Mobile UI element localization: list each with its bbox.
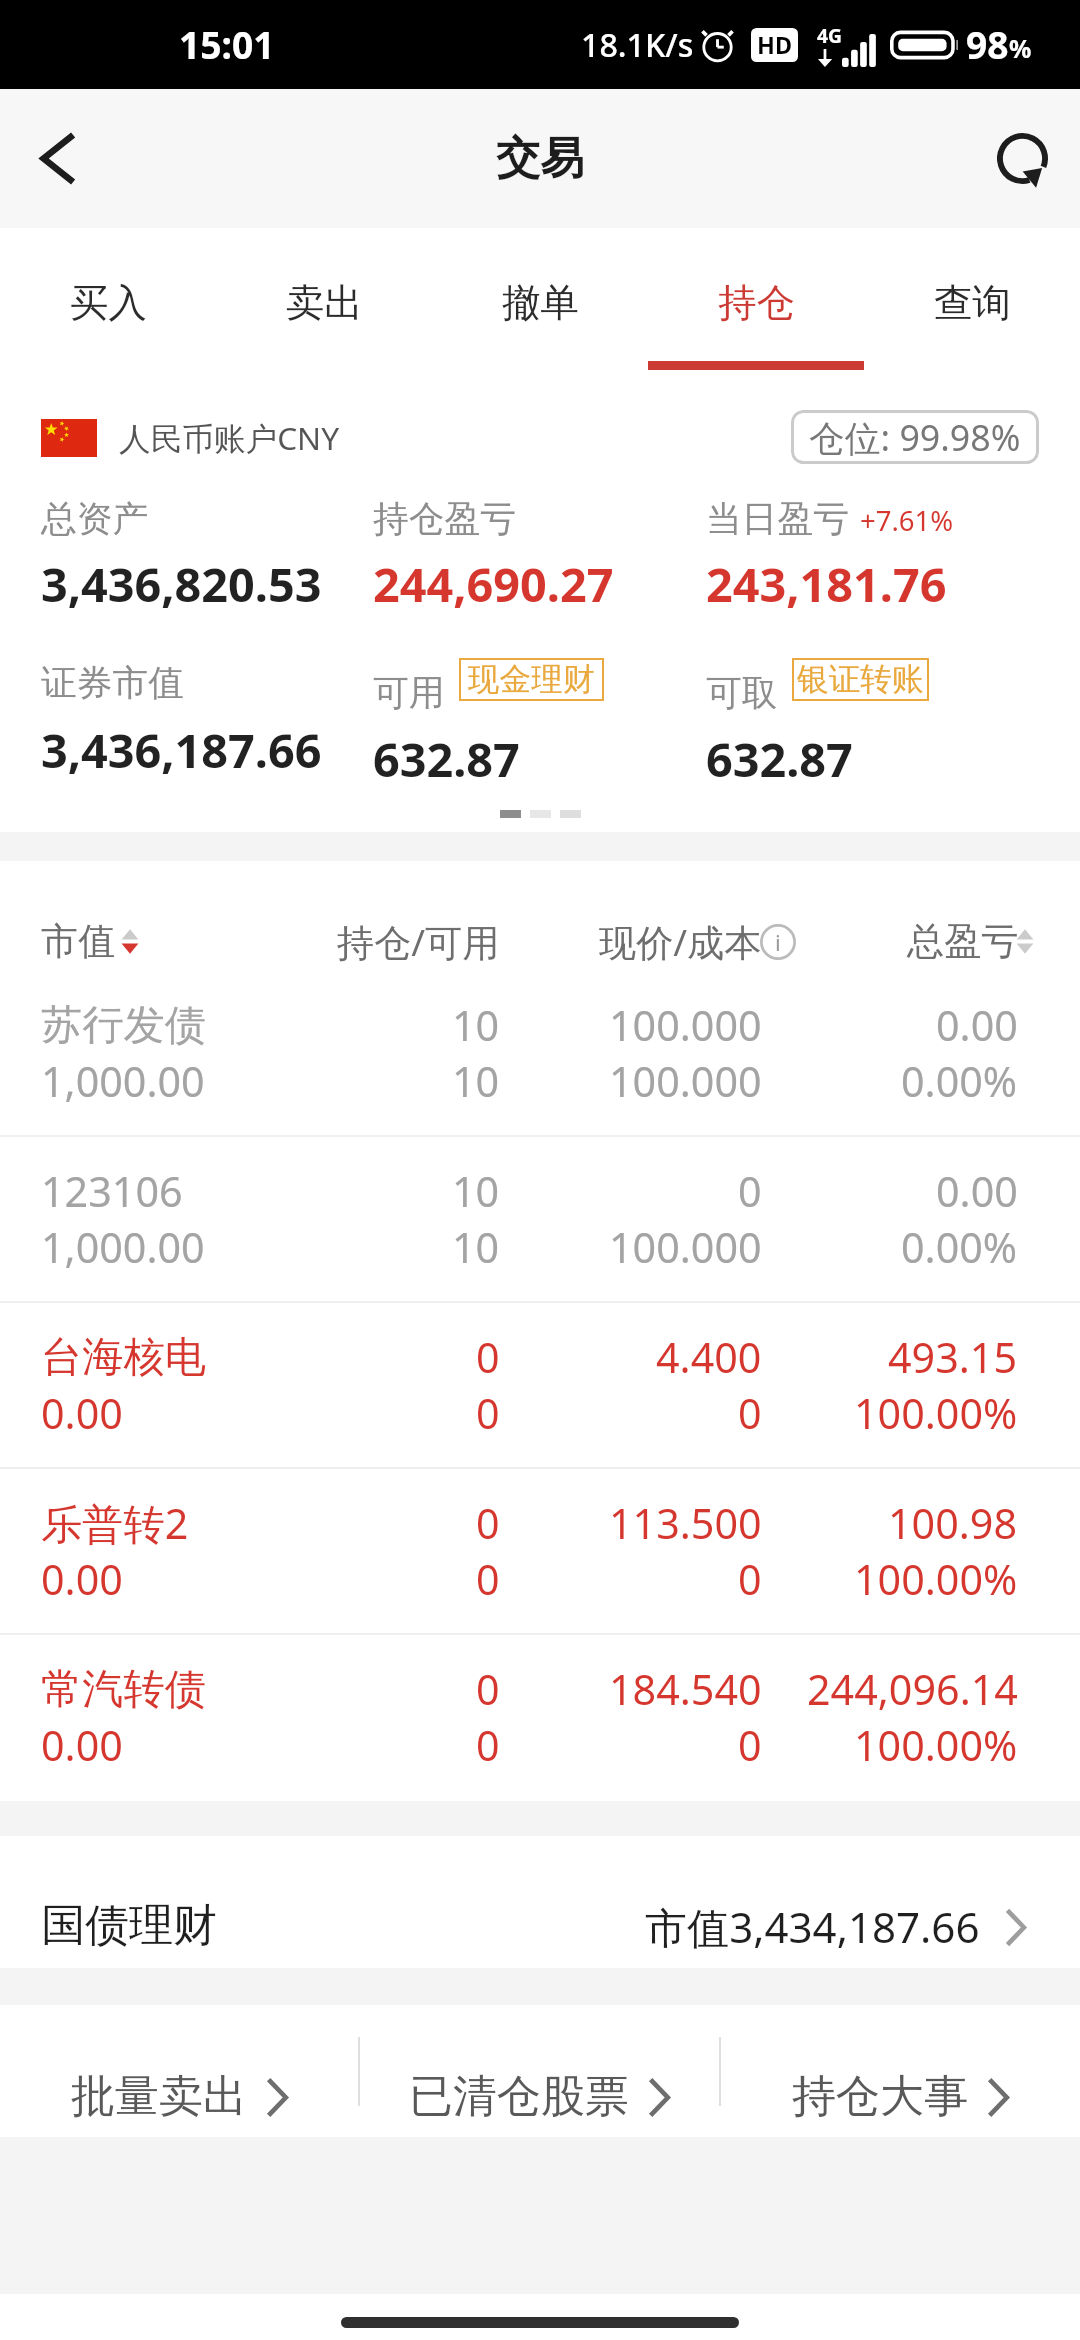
button[interactable]: 已清仓股票 (360, 2044, 719, 2099)
staticText: 493.15 (888, 1329, 1018, 1385)
staticText: 0.00% (901, 1053, 1018, 1109)
staticText: 4.400 (656, 1329, 762, 1385)
staticText: 持仓 (718, 279, 795, 328)
staticText: 已清仓股票 (409, 2069, 629, 2124)
staticText: 卖出 (286, 279, 363, 328)
staticText: 市值3,434,187.66 (645, 1898, 980, 1955)
staticText: 现金理财 (468, 660, 595, 700)
staticText: 乐普转2 (41, 1495, 189, 1551)
staticText: 244,096.14 (807, 1661, 1018, 1717)
staticText: 244,690.27 (373, 552, 614, 616)
staticText: 100.000 (609, 1053, 762, 1109)
staticText: 批量卖出 (71, 2069, 247, 2124)
staticText: 仓位: 99.98% (809, 413, 1021, 462)
staticText: 台海核电 (41, 1331, 206, 1383)
staticText: 持仓大事 (792, 2069, 968, 2124)
staticText: 0 (738, 1385, 762, 1441)
staticText: 可取 (706, 671, 778, 716)
button[interactable]: 123106 (0, 1137, 1080, 1301)
staticText: 0.00 (936, 1163, 1018, 1219)
staticText: 0 (738, 1717, 762, 1773)
staticText: 总盈亏 (907, 918, 1019, 965)
staticText: 100.98 (888, 1495, 1018, 1551)
staticText: 0 (476, 1495, 500, 1551)
staticText: 100.00% (854, 1385, 1018, 1441)
staticText: 10 (452, 1163, 500, 1219)
staticText: 0 (738, 1163, 762, 1219)
staticText: 632.87 (706, 727, 853, 791)
button[interactable]: 批量卖出 (0, 2044, 358, 2099)
staticText: 持仓/可用 (337, 916, 500, 967)
button[interactable]: 国债理财 (0, 1836, 1080, 1968)
staticText: 市值 (41, 918, 116, 965)
button[interactable]: 撤单 (432, 228, 648, 380)
staticText: 100.000 (609, 997, 762, 1053)
staticText: HD (757, 29, 792, 61)
staticText: i (775, 927, 781, 957)
staticText: 银证转账 (797, 660, 924, 700)
staticText: 0 (476, 1551, 500, 1607)
staticText: 3,436,187.66 (41, 718, 322, 782)
staticText: 0.00 (41, 1551, 123, 1607)
staticText: 0 (476, 1329, 500, 1385)
staticText: 10 (452, 1053, 500, 1109)
staticText: 100.00% (854, 1551, 1018, 1607)
staticText: 0 (476, 1385, 500, 1441)
staticText: 632.87 (373, 727, 520, 791)
staticText: 123106 (41, 1163, 183, 1219)
button[interactable]: 查询 (864, 228, 1080, 380)
staticText: 0.00 (936, 997, 1018, 1053)
button[interactable]: 现金理财 (459, 658, 604, 701)
staticText: 1,000.00 (41, 1219, 205, 1275)
button[interactable]: 台海核电 (0, 1303, 1080, 1467)
staticText: 100.000 (609, 1219, 762, 1275)
button[interactable]: 常汽转债 (0, 1635, 1080, 1799)
button[interactable]: 银证转账 (792, 658, 929, 701)
button[interactable]: Back (0, 89, 116, 228)
staticText: 0 (476, 1661, 500, 1717)
button[interactable]: 持仓大事 (721, 2044, 1080, 2099)
staticText: 国债理财 (41, 1898, 217, 1953)
staticText: 总资产 (41, 497, 149, 542)
staticText: 3,436,820.53 (41, 552, 322, 616)
staticText: % (1009, 32, 1032, 66)
staticText: 常汽转债 (41, 1663, 206, 1715)
staticText: 人民币账户CNY (119, 416, 340, 459)
staticText: 243,181.76 (706, 552, 947, 616)
staticText: 98 (966, 19, 1009, 70)
button[interactable]: 苏行发债 (0, 971, 1080, 1135)
button[interactable]: 买入 (0, 228, 216, 380)
staticText: 持仓盈亏 (373, 497, 516, 542)
staticText: 18.1K/s (581, 23, 694, 67)
staticText: 0.00 (41, 1717, 123, 1773)
staticText: 查询 (934, 279, 1011, 328)
staticText: 现价/成本 (599, 916, 762, 967)
staticText: 0 (738, 1551, 762, 1607)
button[interactable]: 仓位: 99.98% (791, 410, 1039, 464)
staticText: 苏行发债 (41, 999, 206, 1051)
staticText: 0 (476, 1717, 500, 1773)
staticText: 当日盈亏 (706, 497, 849, 542)
staticText: 15:01 (179, 19, 275, 70)
staticText: 10 (452, 997, 500, 1053)
staticText: 100.00% (854, 1717, 1018, 1773)
button[interactable]: 持仓 (648, 228, 864, 380)
button[interactable]: 卖出 (216, 228, 432, 380)
staticText: 交易 (496, 131, 584, 186)
button[interactable]: Refresh (964, 89, 1080, 228)
staticText: +7.61% (860, 502, 954, 539)
staticText: 证券市值 (41, 661, 184, 706)
staticText: 撤单 (502, 279, 579, 328)
button[interactable]: 乐普转2 (0, 1469, 1080, 1633)
staticText: 4G (817, 22, 842, 48)
staticText: 0.00 (41, 1385, 123, 1441)
staticText: 买入 (70, 279, 147, 328)
staticText: 1,000.00 (41, 1053, 205, 1109)
staticText: 10 (452, 1219, 500, 1275)
staticText: 113.500 (609, 1495, 762, 1551)
staticText: 可用 (373, 671, 445, 716)
staticText: 184.540 (609, 1661, 762, 1717)
staticText: 0.00% (901, 1219, 1018, 1275)
